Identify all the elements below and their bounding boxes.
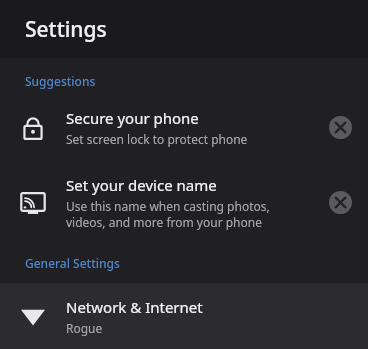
button[interactable]: Dismiss	[312, 93, 368, 161]
staticText: General Settings	[25, 255, 120, 271]
button[interactable]: Lock	[0, 93, 368, 161]
button[interactable]: Network & Internet	[0, 283, 368, 349]
staticText: Set your device name	[66, 175, 217, 195]
staticText: Rogue	[66, 320, 103, 336]
staticText: Use this name when casting photos, video…	[66, 198, 270, 230]
staticText: Set screen lock to protect phone	[66, 131, 248, 147]
other: Lock	[0, 93, 66, 161]
button[interactable]: Dismiss	[312, 161, 368, 243]
staticText: Secure your phone	[66, 108, 199, 128]
staticText: Settings	[25, 15, 107, 44]
staticText: Network & Internet	[66, 297, 203, 317]
staticText: Suggestions	[25, 73, 96, 89]
other: Cast	[0, 161, 66, 243]
button[interactable]: Cast	[0, 161, 368, 243]
